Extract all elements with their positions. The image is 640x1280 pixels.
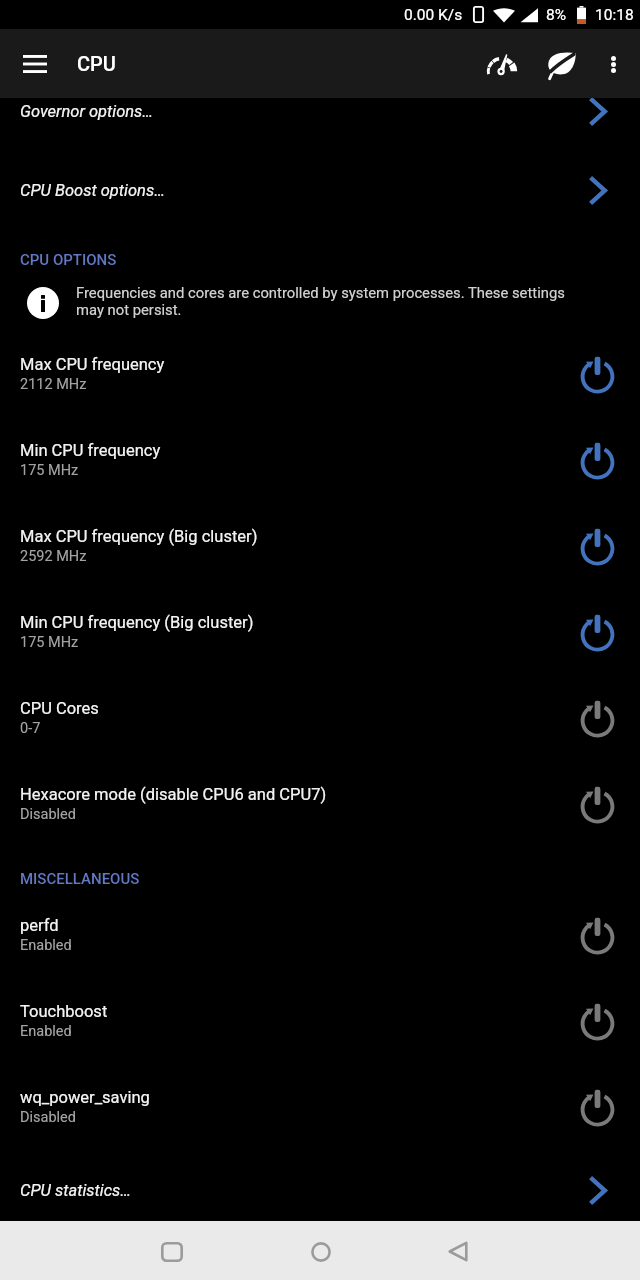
staticText: CPU statistics…	[20, 1181, 132, 1200]
staticText: Enabled	[20, 1023, 72, 1040]
staticText: CPU OPTIONS	[20, 251, 117, 269]
button[interactable]: Back	[431, 1225, 484, 1278]
staticText: Min CPU frequency	[20, 441, 161, 460]
button[interactable]: CPU statistics…	[0, 1150, 640, 1221]
button[interactable]: CPU Cores	[0, 675, 640, 761]
button[interactable]: CPU Boost options…	[0, 151, 640, 230]
staticText: CPU Boost options…	[20, 181, 165, 200]
staticText: 8%	[546, 6, 567, 24]
button[interactable]: Touchboost	[0, 978, 640, 1064]
staticText: 2592 MHz	[20, 548, 87, 565]
button[interactable]: perfd	[0, 892, 640, 978]
staticText: Disabled	[20, 1109, 76, 1126]
staticText: CPU Cores	[20, 699, 99, 718]
button[interactable]: Min CPU frequency	[0, 417, 640, 503]
staticText: 175 MHz	[20, 634, 79, 651]
button[interactable]: Battery saver	[537, 40, 585, 88]
staticText: MISCELLANEOUS	[20, 870, 140, 888]
button[interactable]: Max CPU frequency	[0, 331, 640, 417]
staticText: Touchboost	[20, 1002, 108, 1021]
staticText: Max CPU frequency (Big cluster)	[20, 527, 258, 546]
staticText: Disabled	[20, 806, 76, 823]
button[interactable]: Max CPU frequency (Big cluster)	[0, 503, 640, 589]
staticText: 0-7	[20, 720, 41, 737]
button[interactable]: Monitor	[479, 40, 527, 88]
button[interactable]: Navigation menu	[11, 40, 59, 88]
button[interactable]: Recent apps	[145, 1225, 198, 1278]
staticText: 0.00 K/s	[404, 6, 463, 24]
staticText: Min CPU frequency (Big cluster)	[20, 613, 254, 632]
button[interactable]: wq_power_saving	[0, 1064, 640, 1150]
button[interactable]: Governor options…	[0, 98, 640, 151]
staticText: wq_power_saving	[20, 1088, 150, 1107]
staticText: Max CPU frequency	[20, 355, 165, 374]
staticText: 2112 MHz	[20, 376, 87, 393]
button[interactable]: Home	[294, 1225, 347, 1278]
staticText: 175 MHz	[20, 462, 79, 479]
staticText: Frequencies and cores are controlled by …	[76, 284, 582, 318]
button[interactable]: Min CPU frequency (Big cluster)	[0, 589, 640, 675]
button[interactable]: Hexacore mode (disable CPU6 and CPU7)	[0, 761, 640, 847]
staticText: Enabled	[20, 937, 72, 954]
staticText: 10:18	[595, 6, 634, 24]
staticText: Governor options…	[20, 102, 154, 121]
staticText: Hexacore mode (disable CPU6 and CPU7)	[20, 785, 327, 804]
staticText: CPU	[77, 52, 116, 75]
button[interactable]: More options	[594, 45, 632, 83]
staticText: perfd	[20, 916, 59, 935]
